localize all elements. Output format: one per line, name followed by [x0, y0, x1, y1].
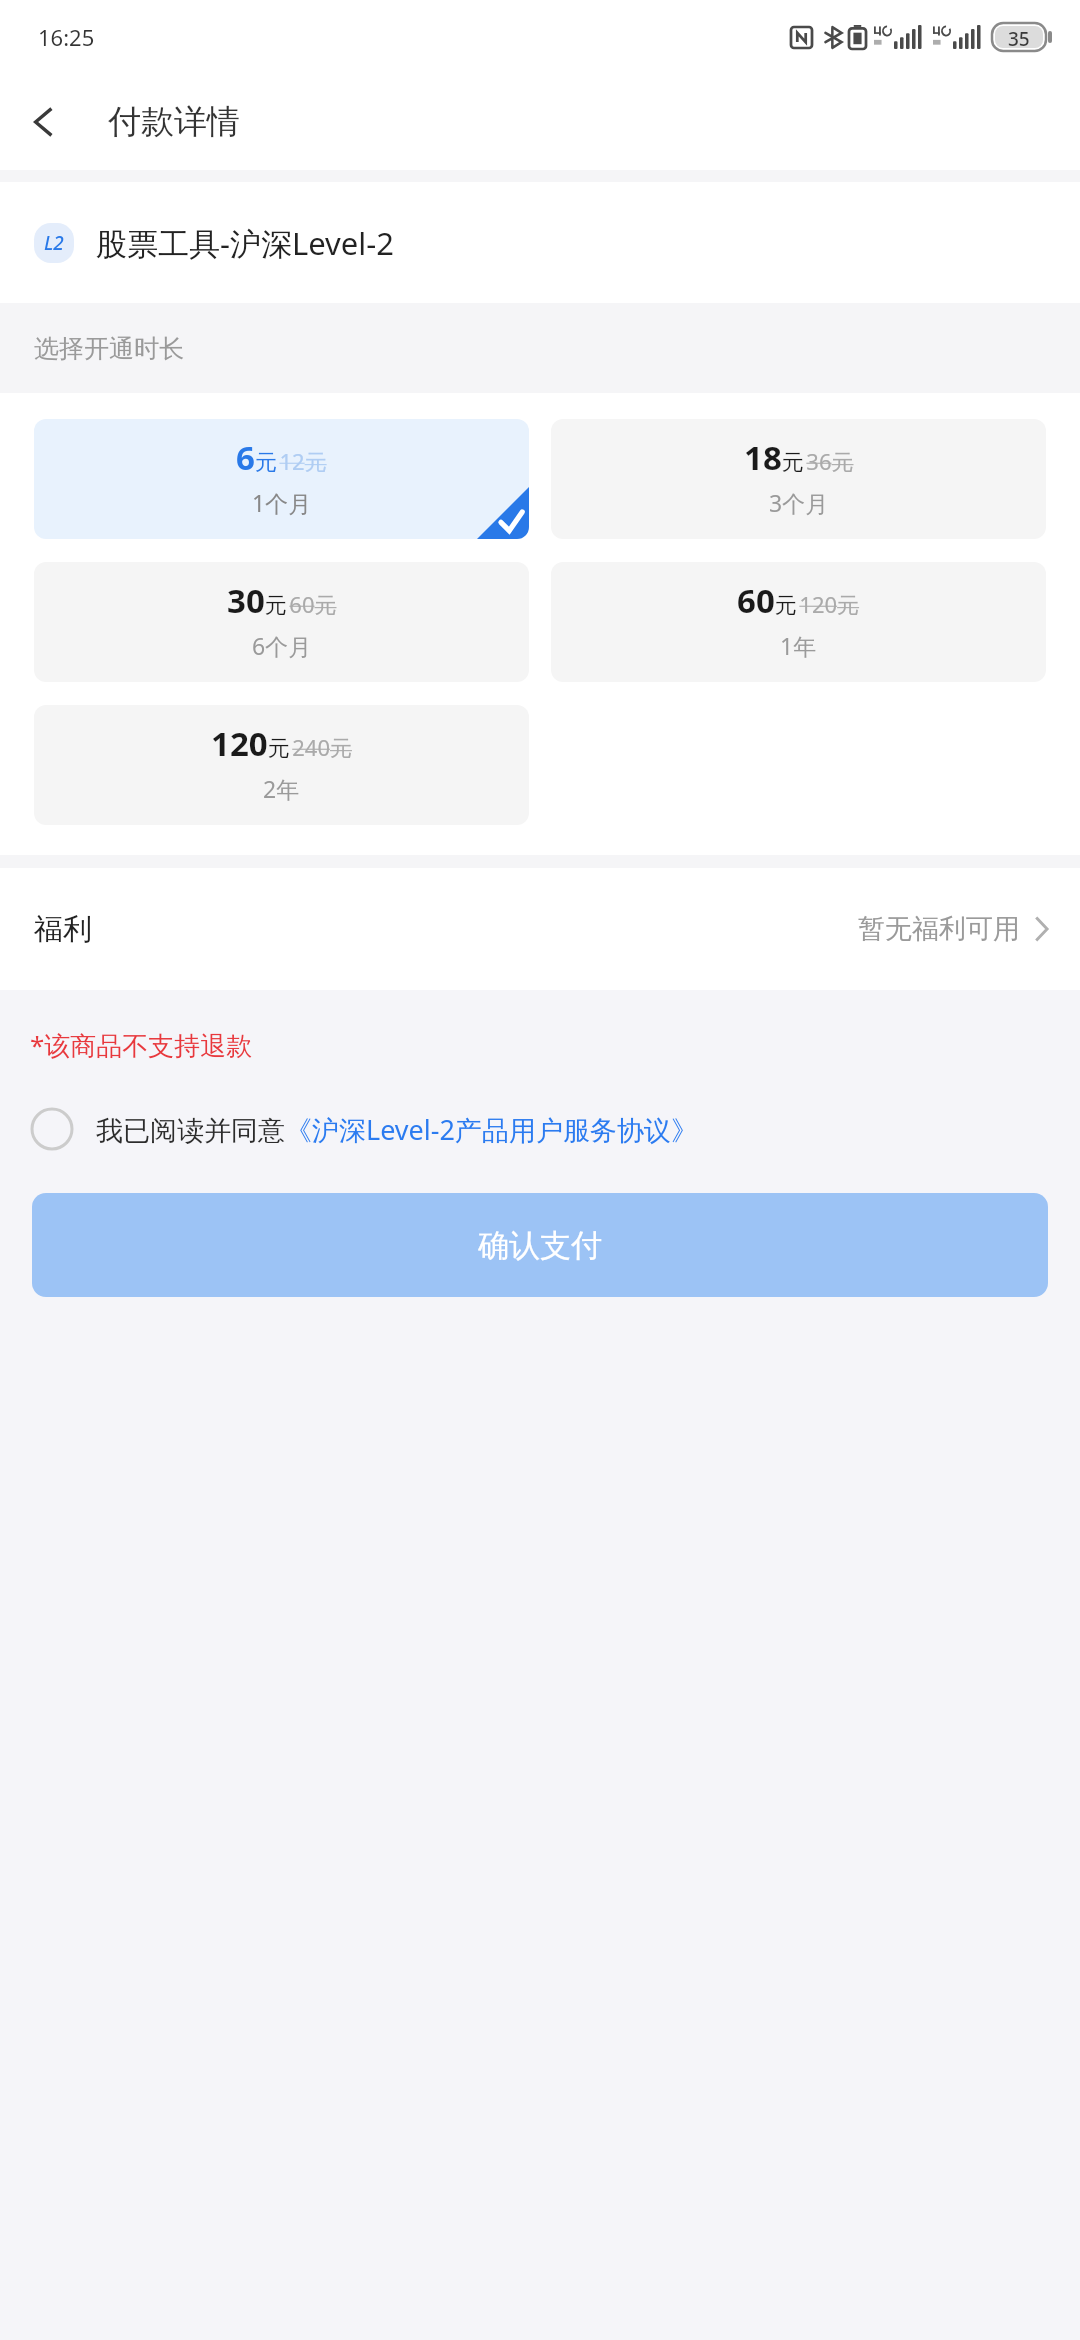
staticText: 6个月 — [252, 630, 312, 661]
staticText: 2年 — [263, 773, 300, 804]
button[interactable]: 我已阅读并同意《沪深Level-2产品用户服务协议》 — [30, 1087, 1080, 1171]
staticText: 16:25 — [38, 22, 95, 52]
staticText: *该商品不支持退款 — [30, 1027, 253, 1063]
button[interactable]: 120元 240元 — [34, 705, 529, 825]
button[interactable]: Back — [0, 78, 88, 166]
staticText: 选择开通时长 — [34, 333, 184, 364]
button[interactable]: 18元 36元 — [551, 419, 1046, 539]
staticText: 福利 — [34, 911, 92, 948]
staticText: 30元 60元 — [227, 578, 337, 623]
button[interactable]: 60元 120元 — [551, 562, 1046, 682]
staticText: 暂无福利可用 — [858, 912, 1020, 946]
button[interactable]: 6元 12元 — [34, 419, 529, 539]
staticText: 6元 12元 — [236, 435, 327, 480]
staticText: L2 — [44, 230, 64, 256]
staticText: 付款详情 — [108, 101, 240, 143]
staticText: 120元 240元 — [211, 721, 352, 766]
staticText: 60元 120元 — [737, 578, 860, 623]
staticText: 18元 36元 — [744, 435, 854, 480]
staticText: 我已阅读并同意《沪深Level-2产品用户服务协议》 — [96, 1111, 698, 1148]
staticText: 3个月 — [769, 487, 829, 518]
button[interactable]: 确认支付 — [32, 1193, 1048, 1297]
staticText: 35 — [1008, 26, 1030, 48]
button[interactable]: 福利 — [0, 868, 1080, 990]
button[interactable]: 30元 60元 — [34, 562, 529, 682]
staticText: 股票工具-沪深Level-2 — [96, 222, 395, 264]
staticText: 确认支付 — [478, 1226, 602, 1265]
staticText: 1年 — [780, 630, 817, 661]
staticText: 1个月 — [252, 487, 312, 518]
